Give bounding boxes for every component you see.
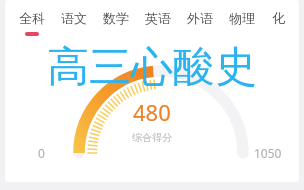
- button[interactable]: 全科: [11, 8, 53, 38]
- staticText: 高三心酸史: [47, 41, 257, 94]
- button[interactable]: 外语: [179, 8, 221, 38]
- button[interactable]: 物理: [221, 8, 263, 38]
- staticText: 物理: [229, 10, 255, 26]
- button[interactable]: 英语: [137, 8, 179, 38]
- staticText: 全科: [19, 10, 45, 26]
- staticText: 0: [38, 145, 45, 161]
- staticText: 语文: [61, 10, 87, 26]
- staticText: 480: [133, 97, 171, 127]
- staticText: 综合得分: [132, 131, 172, 144]
- button[interactable]: 语文: [53, 8, 95, 38]
- staticText: 1050: [254, 145, 282, 161]
- staticText: 英语: [145, 10, 171, 26]
- staticText: 化: [272, 10, 285, 26]
- staticText: 外语: [187, 10, 213, 26]
- staticText: 数学: [103, 10, 129, 26]
- button[interactable]: 数学: [95, 8, 137, 38]
- button[interactable]: 化: [263, 8, 293, 38]
